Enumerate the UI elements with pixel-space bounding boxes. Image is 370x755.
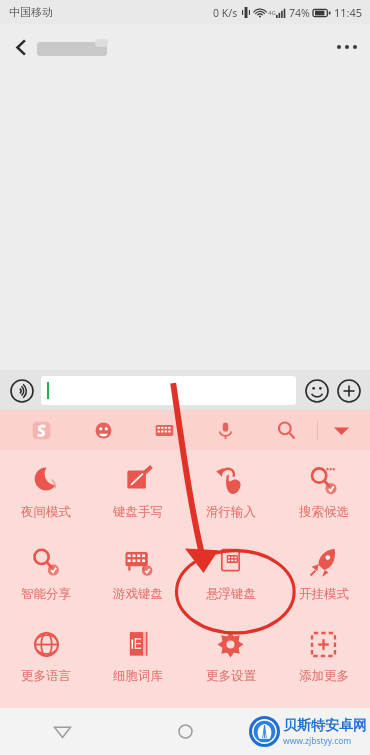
button[interactable]: 开挂模式 xyxy=(277,538,370,620)
button[interactable] xyxy=(41,376,296,405)
button[interactable]: 键盘手写 xyxy=(92,456,184,538)
button[interactable]: Back xyxy=(0,708,124,755)
staticText: www.zjbstyy.com xyxy=(283,735,352,747)
button[interactable]: Keyboard layout xyxy=(134,410,195,450)
button[interactable]: 游戏键盘 xyxy=(92,538,184,620)
button[interactable]: 细胞词库 xyxy=(92,620,184,702)
staticText: 智能分享 xyxy=(21,586,71,602)
staticText: 搜索候选 xyxy=(299,504,349,520)
button[interactable]: More options xyxy=(324,24,370,70)
button[interactable]: 智能分享 xyxy=(0,538,92,620)
button[interactable]: 更多设置 xyxy=(184,620,277,702)
staticText: 悬浮键盘 xyxy=(206,586,256,602)
staticText: 贝斯特安卓网 xyxy=(283,717,367,735)
button[interactable]: Voice message xyxy=(8,377,35,404)
staticText: 74% xyxy=(289,6,310,20)
staticText: 添加更多 xyxy=(299,668,349,684)
staticText: 游戏键盘 xyxy=(113,586,163,602)
staticText: 更多语言 xyxy=(21,668,71,684)
staticText: 细胞词库 xyxy=(113,668,163,684)
button[interactable]: 搜索候选 xyxy=(277,456,370,538)
button[interactable]: Sogou input xyxy=(10,410,72,450)
staticText: 更多设置 xyxy=(206,668,256,684)
button[interactable]: Search xyxy=(256,410,317,450)
staticText: 11:45 xyxy=(334,5,363,20)
staticText: 滑行输入 xyxy=(206,504,256,520)
button[interactable]: Emoji panel xyxy=(72,410,134,450)
button[interactable]: 滑行输入 xyxy=(184,456,277,538)
staticText: 0 K/s xyxy=(213,6,238,20)
staticText: 开挂模式 xyxy=(299,586,349,602)
button[interactable]: 夜间模式 xyxy=(0,456,92,538)
button[interactable]: 添加更多 xyxy=(277,620,370,702)
button[interactable]: More functions xyxy=(335,377,362,404)
button[interactable]: 悬浮键盘 xyxy=(184,538,277,620)
staticText: 中国移动 xyxy=(9,5,53,19)
button[interactable]: Voice input xyxy=(195,410,256,450)
staticText: 夜间模式 xyxy=(21,504,71,520)
button[interactable]: Home xyxy=(124,708,247,755)
staticText: 键盘手写 xyxy=(113,504,163,520)
button[interactable]: Emoji xyxy=(303,377,330,404)
button[interactable]: Recent apps xyxy=(247,708,370,755)
button[interactable]: Hide panel xyxy=(318,410,364,450)
button[interactable]: Back xyxy=(0,26,42,68)
staticText: 4G xyxy=(268,9,276,17)
button[interactable]: 更多语言 xyxy=(0,620,92,702)
other: Site logo xyxy=(249,716,280,747)
